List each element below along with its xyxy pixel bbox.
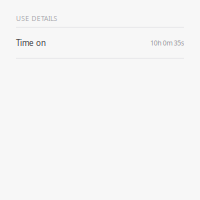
button[interactable]: Time on bbox=[0, 28, 200, 58]
staticText: USE DETAILS bbox=[16, 14, 57, 23]
staticText: 10h 0m 35s bbox=[150, 38, 184, 47]
staticText: Time on bbox=[16, 37, 46, 48]
